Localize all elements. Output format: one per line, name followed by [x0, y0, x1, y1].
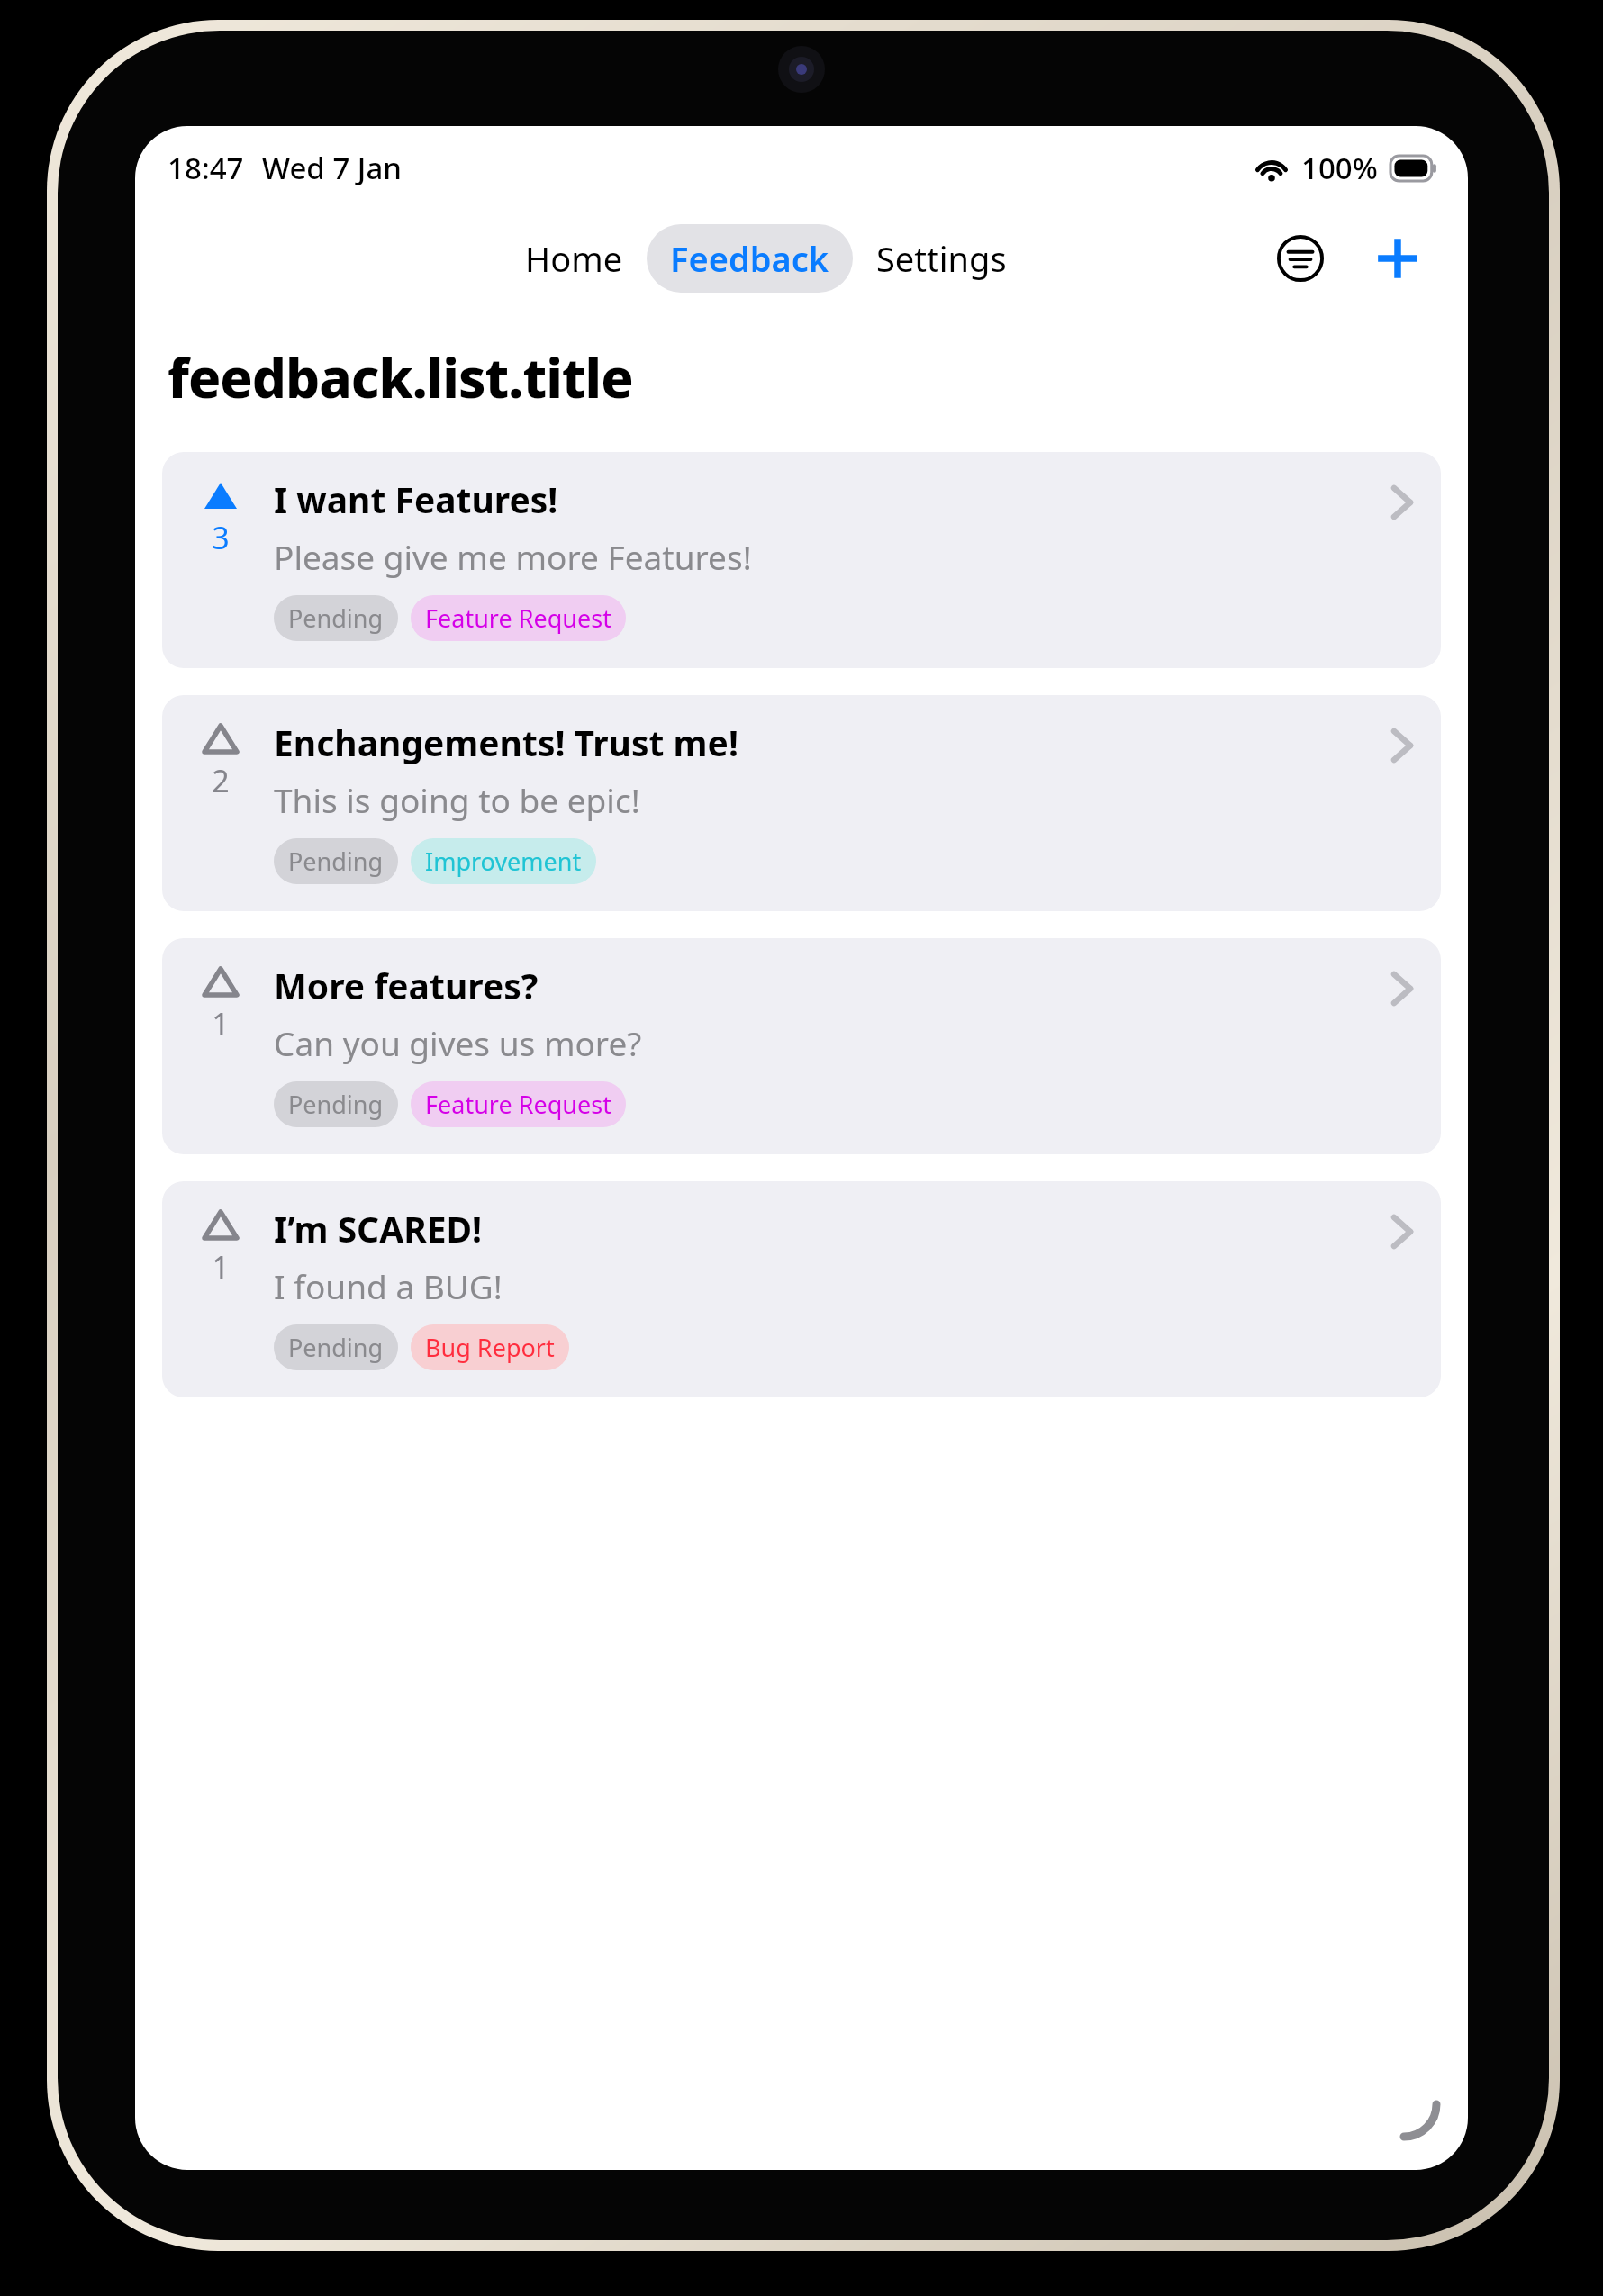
- staticText: Feedback: [670, 235, 829, 282]
- staticText: More features?: [274, 962, 539, 1009]
- staticText: This is going to be epic!: [274, 777, 640, 822]
- staticText: Settings: [876, 235, 1007, 282]
- staticText: 18:47: [168, 148, 244, 188]
- button[interactable]: Add feedback: [1369, 230, 1426, 287]
- staticText: Pending: [288, 845, 384, 878]
- staticText: I’m SCARED!: [274, 1205, 483, 1252]
- button[interactable]: 3: [162, 452, 1441, 668]
- button[interactable]: 1: [162, 938, 1441, 1154]
- staticText: 1: [212, 1246, 230, 1288]
- staticText: Feature Request: [425, 1088, 611, 1121]
- staticText: 2: [212, 760, 230, 801]
- button[interactable]: Feedback: [647, 224, 853, 293]
- staticText: Pending: [288, 601, 384, 635]
- staticText: Improvement: [425, 845, 582, 878]
- button[interactable]: Home: [502, 224, 647, 293]
- staticText: Pending: [288, 1088, 384, 1121]
- staticText: Pending: [288, 1331, 384, 1364]
- staticText: Please give me more Features!: [274, 534, 752, 579]
- staticText: I want Features!: [274, 475, 558, 523]
- staticText: 1: [212, 1003, 230, 1044]
- button[interactable]: 2: [162, 695, 1441, 911]
- staticText: Bug Report: [425, 1331, 555, 1364]
- button[interactable]: 1: [162, 1181, 1441, 1397]
- staticText: Can you gives us more?: [274, 1020, 642, 1065]
- staticText: Feature Request: [425, 601, 611, 635]
- staticText: feedback.list.title: [168, 340, 633, 414]
- button[interactable]: Filter: [1272, 230, 1329, 287]
- staticText: 100%: [1301, 148, 1378, 188]
- staticText: Home: [525, 235, 623, 282]
- staticText: Enchangements! Trust me!: [274, 719, 738, 766]
- button[interactable]: Settings: [853, 224, 1030, 293]
- staticText: 3: [212, 517, 230, 558]
- staticText: Wed 7 Jan: [262, 148, 402, 188]
- staticText: I found a BUG!: [274, 1263, 503, 1308]
